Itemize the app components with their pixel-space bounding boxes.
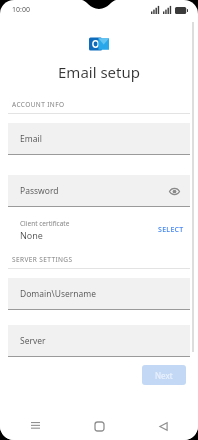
staticText: Client certificate: [20, 219, 70, 228]
staticText: Server: [20, 335, 46, 347]
staticText: Email: [20, 133, 42, 145]
staticText: 10:00: [12, 5, 30, 15]
staticText: ACCOUNT INFO: [12, 100, 65, 109]
button[interactable]: Domain\Username: [8, 278, 190, 309]
staticText: SELECT: [158, 225, 184, 235]
staticText: None: [20, 229, 43, 241]
staticText: Domain\Username: [20, 288, 97, 300]
button[interactable]: Back: [150, 413, 176, 439]
button[interactable]: Client certificate: [8, 219, 190, 241]
button[interactable]: Recents: [22, 413, 48, 439]
button[interactable]: Email: [8, 123, 190, 154]
staticText: SERVER SETTINGS: [12, 255, 73, 264]
staticText: Next: [155, 370, 173, 381]
staticText: Password: [20, 185, 59, 197]
button[interactable]: SELECT: [158, 225, 184, 235]
button[interactable]: Show password: [166, 183, 182, 199]
button[interactable]: Server: [8, 325, 190, 356]
staticText: Email setup: [0, 62, 198, 82]
button[interactable]: Password: [8, 175, 190, 206]
button[interactable]: Home: [86, 413, 112, 439]
button[interactable]: Next: [142, 365, 186, 385]
